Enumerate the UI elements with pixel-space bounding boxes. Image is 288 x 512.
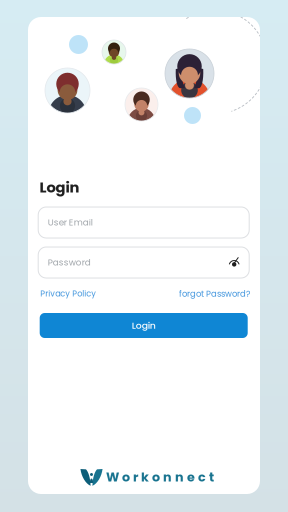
button[interactable]: Login — [40, 313, 248, 338]
staticText: User Email — [48, 216, 93, 229]
staticText: Login — [39, 177, 79, 197]
button[interactable]: Show password — [229, 257, 240, 268]
button[interactable]: forgot Password? — [170, 288, 250, 300]
staticText: W o r k o n n e c t — [106, 468, 214, 486]
staticText: Password — [48, 256, 91, 269]
staticText: forgot Password? — [179, 288, 250, 300]
staticText: Privacy Policy — [40, 288, 96, 299]
staticText: Login — [132, 319, 156, 332]
button[interactable]: Privacy Policy — [40, 288, 96, 299]
